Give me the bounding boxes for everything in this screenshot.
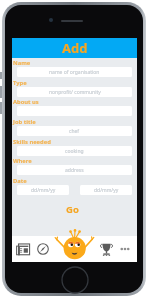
button[interactable]: dd/mm/yy xyxy=(80,185,132,195)
button[interactable]: cooking xyxy=(17,146,132,156)
staticText: nonprofit/ community xyxy=(49,89,101,96)
staticText: Job title xyxy=(13,118,36,126)
button[interactable]: Leaderboard xyxy=(95,236,117,262)
button[interactable]: name of organisation xyxy=(17,67,132,77)
staticText: cooking xyxy=(65,148,84,155)
staticText: Where xyxy=(13,157,32,165)
button[interactable]: chef xyxy=(17,126,132,136)
staticText: About us xyxy=(13,98,39,106)
staticText: dd/mm/yy xyxy=(94,187,119,194)
button[interactable]: Explore xyxy=(32,236,54,262)
staticText: Go xyxy=(66,203,79,216)
button[interactable]: News xyxy=(12,236,34,262)
button[interactable]: More xyxy=(114,236,136,262)
staticText: dd/mm/yy xyxy=(31,187,56,194)
staticText: chef xyxy=(69,128,80,135)
button[interactable]: Go xyxy=(63,201,82,217)
staticText: Type xyxy=(13,79,27,87)
staticText: Add xyxy=(62,39,88,57)
button[interactable]: dd/mm/yy xyxy=(17,185,69,195)
staticText: Skills needed xyxy=(13,138,51,146)
staticText: name of organisation xyxy=(49,69,100,76)
button[interactable]: address xyxy=(17,165,132,175)
button[interactable]: nonprofit/ community xyxy=(17,87,132,97)
button[interactable]: Add xyxy=(54,227,95,261)
staticText: Name xyxy=(13,59,31,67)
staticText: Date xyxy=(13,177,27,185)
staticText: address xyxy=(65,167,84,174)
